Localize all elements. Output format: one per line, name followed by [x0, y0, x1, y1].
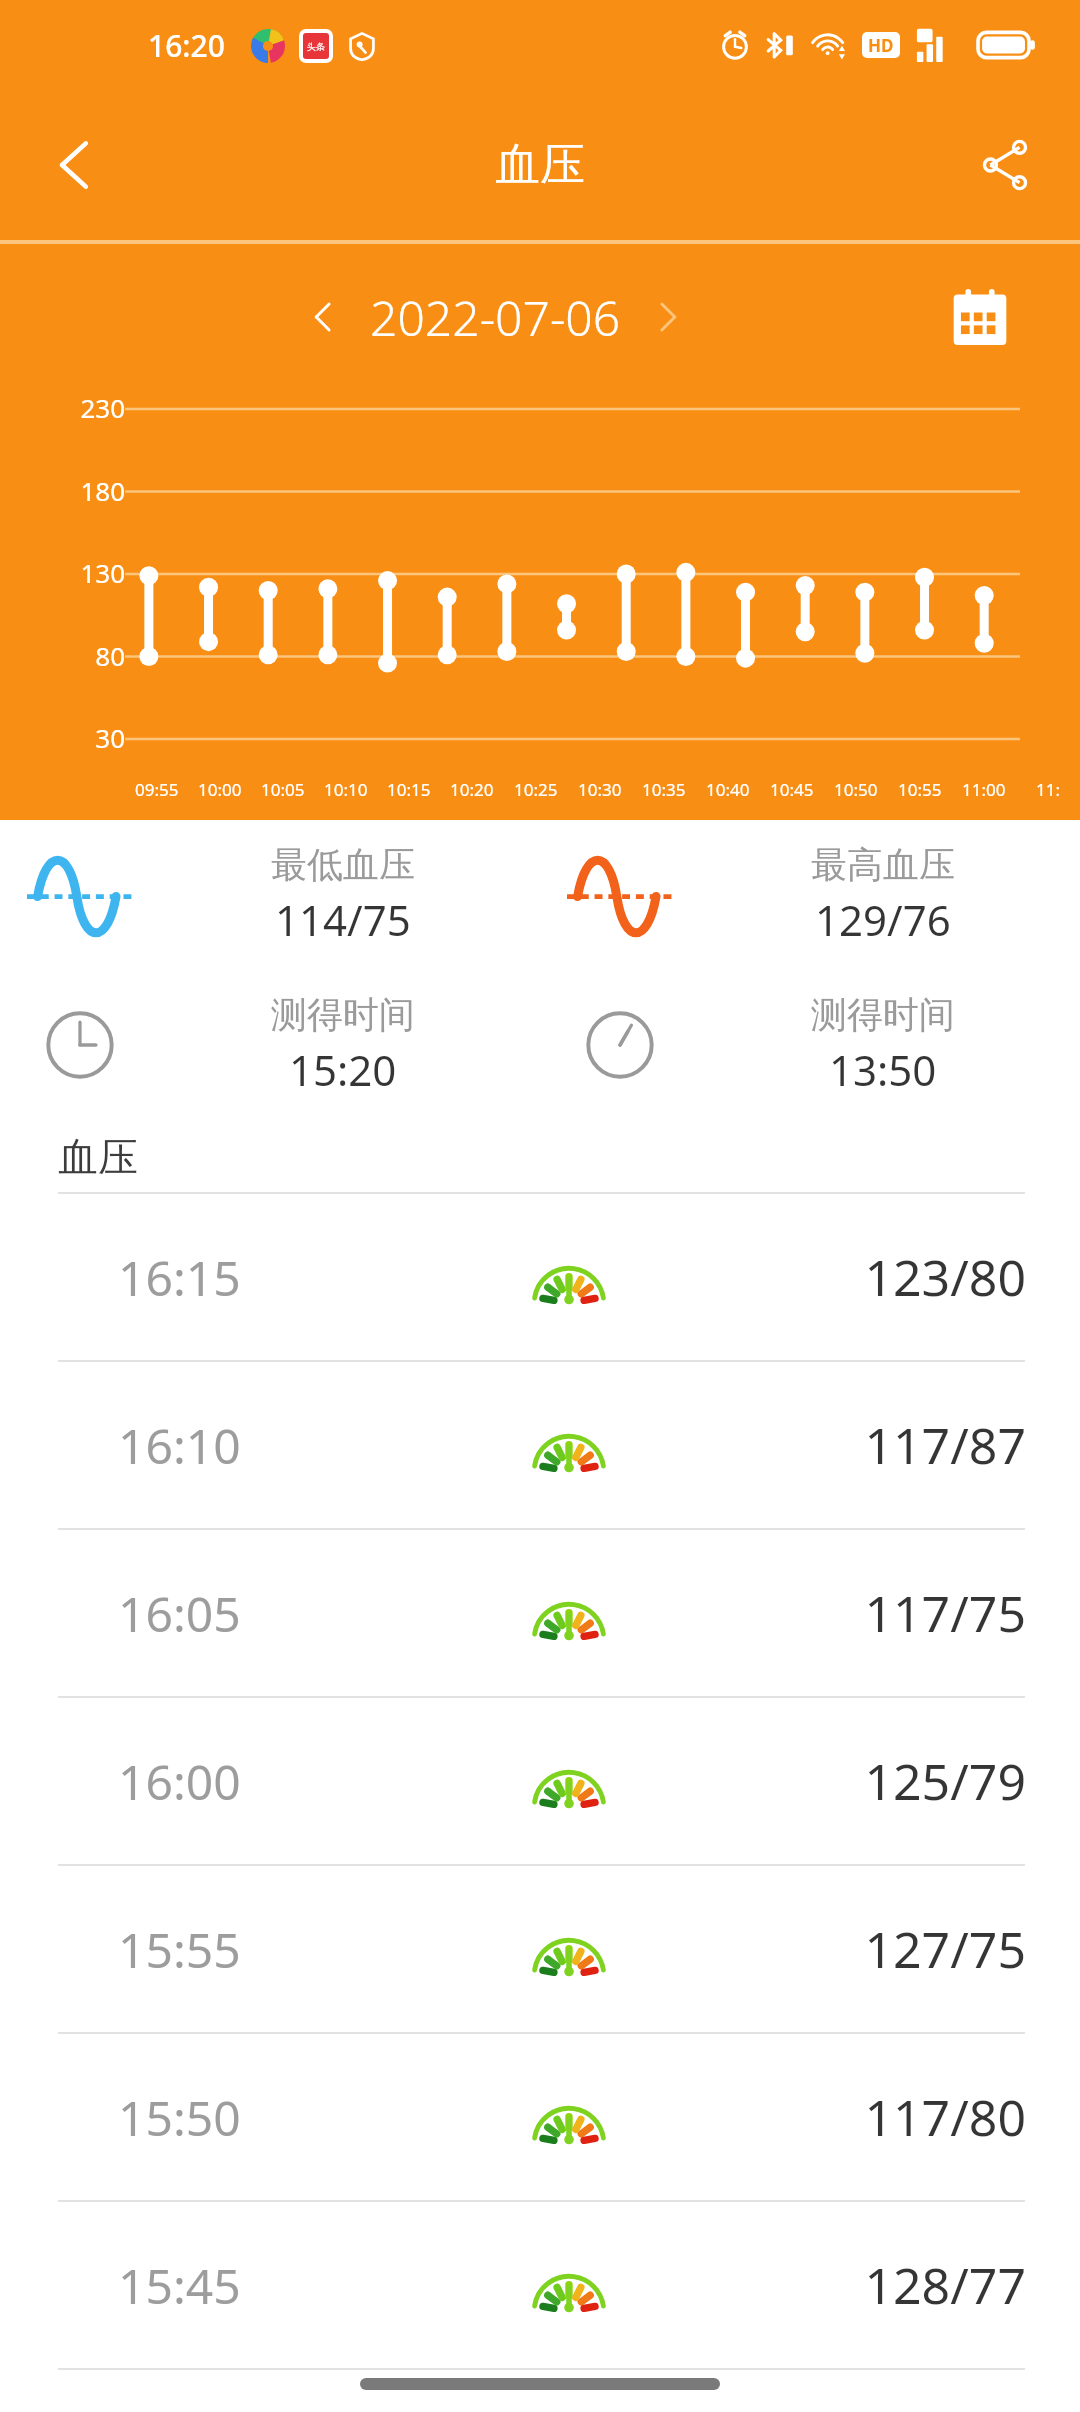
staticText: 血压 [58, 1132, 138, 1182]
staticText: 15:55 [118, 1917, 358, 1982]
staticText: 30 [55, 720, 125, 755]
staticText: 123/80 [780, 1243, 1026, 1311]
staticText: 10:10 [324, 778, 368, 801]
staticText: 头条 [307, 41, 325, 52]
staticText: 80 [55, 638, 125, 673]
button[interactable]: Pick date [940, 277, 1020, 357]
staticText: 117/75 [780, 1579, 1026, 1647]
button[interactable]: 16:00 [0, 1698, 1080, 1864]
button[interactable]: 15:55 [0, 1866, 1080, 2032]
staticText: 10:25 [514, 778, 558, 801]
staticText: 130 [55, 555, 125, 590]
staticText: 15:50 [118, 2085, 358, 2150]
button[interactable]: 15:50 [0, 2034, 1080, 2200]
staticText: 最低血压 [271, 842, 415, 887]
staticText: 10:20 [450, 778, 494, 801]
staticText: 10:05 [261, 778, 305, 801]
staticText: 114/75 [275, 891, 411, 948]
button[interactable]: 测得时间 [0, 992, 540, 1098]
staticText: 128/77 [780, 2251, 1026, 2319]
staticText: 10:55 [898, 778, 942, 801]
staticText: 16:10 [118, 1413, 358, 1478]
staticText: 13:50 [829, 1041, 937, 1098]
staticText: 10:40 [706, 778, 750, 801]
staticText: 15:20 [289, 1041, 397, 1098]
staticText: 16:15 [118, 1245, 358, 1310]
staticText: HD [868, 34, 894, 57]
staticText: 最高血压 [811, 842, 955, 887]
staticText: 127/75 [780, 1915, 1026, 1983]
staticText: 16:00 [118, 1749, 358, 1814]
staticText: 16:05 [118, 1581, 358, 1646]
staticText: 测得时间 [271, 992, 415, 1037]
button[interactable]: Previous day [286, 280, 360, 354]
button[interactable]: 最低血压 [0, 842, 540, 948]
staticText: 血压 [495, 137, 585, 194]
staticText: 10:15 [387, 778, 431, 801]
staticText: 11: [1036, 778, 1061, 801]
staticText: 10:00 [198, 778, 242, 801]
staticText: 测得时间 [811, 992, 955, 1037]
staticText: 15:45 [118, 2253, 358, 2318]
staticText: 125/79 [780, 1747, 1026, 1815]
button[interactable]: 16:10 [0, 1362, 1080, 1528]
button[interactable]: Share [950, 110, 1060, 220]
staticText: 11:00 [962, 778, 1006, 801]
button[interactable]: Next day [631, 280, 705, 354]
button[interactable]: 测得时间 [540, 992, 1080, 1098]
button[interactable]: 最高血压 [540, 842, 1080, 948]
button[interactable]: Back [20, 110, 130, 220]
staticText: 117/87 [780, 1411, 1026, 1479]
button[interactable]: 2022-07-06 [370, 285, 621, 350]
staticText: 10:50 [834, 778, 878, 801]
button[interactable]: 15:45 [0, 2202, 1080, 2368]
staticText: 10:35 [642, 778, 686, 801]
staticText: 10:30 [578, 778, 622, 801]
button[interactable]: 16:15 [0, 1194, 1080, 1360]
button[interactable]: 16:05 [0, 1530, 1080, 1696]
staticText: 10:45 [770, 778, 814, 801]
staticText: 230 [55, 390, 125, 425]
staticText: 09:55 [135, 778, 179, 801]
staticText: 129/76 [815, 891, 951, 948]
staticText: 117/80 [780, 2083, 1026, 2151]
staticText: 16:20 [148, 25, 225, 66]
staticText: 180 [55, 473, 125, 508]
